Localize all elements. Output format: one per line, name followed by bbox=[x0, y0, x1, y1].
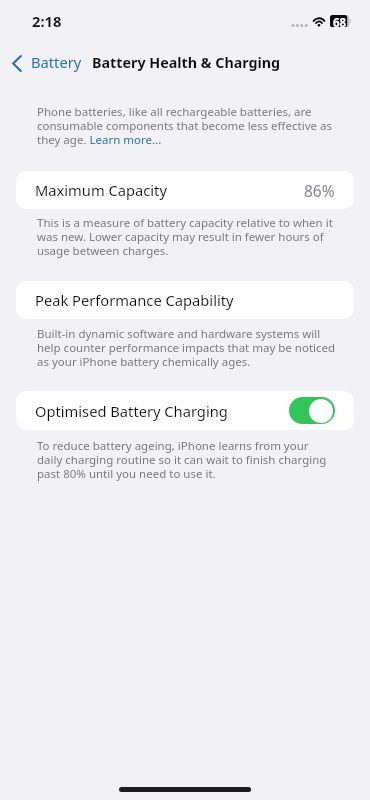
staticText: To reduce battery ageing, iPhone learns … bbox=[37, 438, 336, 481]
staticText: Peak Performance Capability bbox=[35, 290, 234, 310]
staticText: 68 bbox=[333, 15, 347, 31]
staticText: Battery bbox=[31, 52, 82, 72]
button[interactable]: Optimised Battery Charging, on bbox=[289, 397, 335, 424]
staticText: 86% bbox=[304, 180, 335, 201]
button[interactable]: Maximum Capacity bbox=[16, 171, 354, 209]
staticText: Optimised Battery Charging bbox=[35, 401, 228, 421]
staticText: This is a measure of battery capacity re… bbox=[37, 215, 336, 258]
staticText: Built-in dynamic software and hardware s… bbox=[37, 326, 336, 369]
button[interactable]: Battery bbox=[0, 52, 90, 72]
staticText: Maximum Capacity bbox=[35, 180, 167, 200]
other: Cellular signal bbox=[290, 21, 309, 30]
other: Wi-Fi bbox=[311, 14, 327, 27]
button[interactable]: Peak Performance Capability bbox=[16, 281, 354, 319]
other: Battery 68 percent bbox=[330, 15, 351, 31]
staticText: Battery Health & Charging bbox=[92, 53, 281, 72]
staticText: Phone batteries, like all rechargeable b… bbox=[37, 104, 336, 147]
staticText: 2:18 bbox=[32, 11, 62, 31]
